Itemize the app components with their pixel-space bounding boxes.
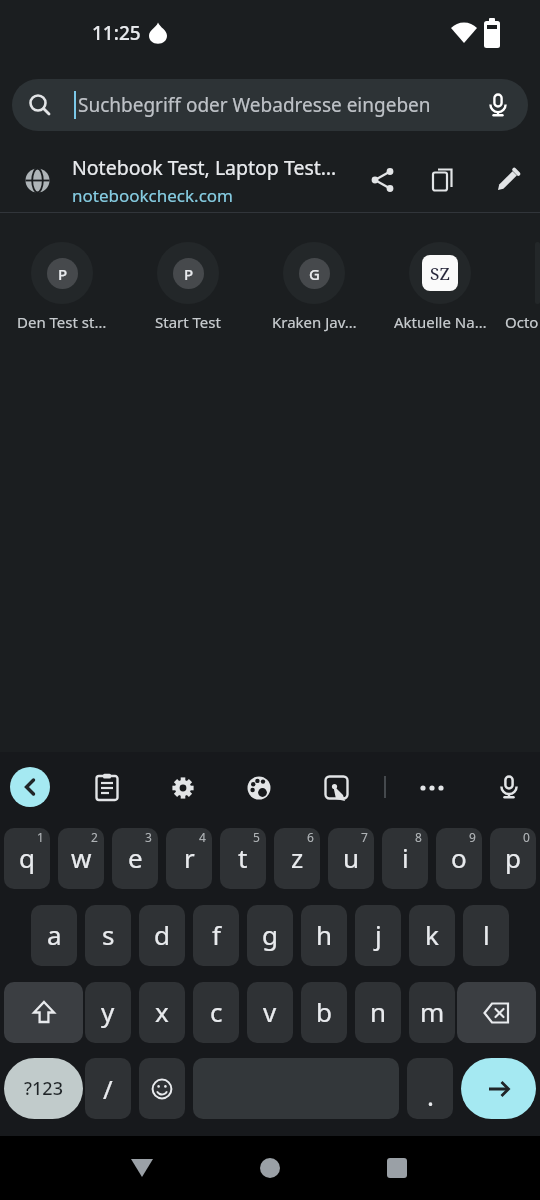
button[interactable]: k <box>409 905 455 966</box>
button[interactable] <box>457 982 536 1043</box>
button[interactable] <box>416 771 448 803</box>
button[interactable]: / <box>85 1058 131 1119</box>
staticText: c <box>210 994 223 1029</box>
staticText: i <box>402 840 409 875</box>
staticText: o <box>451 840 467 875</box>
staticText: Start Test <box>155 312 221 332</box>
staticText: 9 <box>469 829 476 845</box>
button[interactable] <box>493 772 525 804</box>
staticText: u <box>343 840 360 875</box>
staticText: d <box>154 917 170 952</box>
button[interactable]: j <box>355 905 401 966</box>
button[interactable] <box>461 1058 536 1119</box>
button[interactable]: y <box>85 982 131 1043</box>
button[interactable]: m <box>409 982 455 1043</box>
staticText: Octob <box>505 312 540 332</box>
staticText: 11:25 <box>92 20 141 46</box>
button[interactable]: P <box>126 238 250 342</box>
staticText: x <box>155 994 169 1029</box>
button[interactable]: Suchbegriff oder Webadresse eingeben <box>12 79 528 131</box>
button[interactable] <box>426 162 462 198</box>
staticText: f <box>212 917 221 952</box>
button[interactable] <box>91 771 123 803</box>
button[interactable]: u <box>328 828 374 889</box>
button[interactable]: v <box>247 982 293 1043</box>
staticText: e <box>128 840 143 875</box>
staticText: s <box>102 917 115 952</box>
button[interactable] <box>120 1146 164 1190</box>
button[interactable] <box>365 162 401 198</box>
staticText: . <box>427 1078 434 1113</box>
button[interactable]: P <box>0 238 124 342</box>
staticText: Notebook Test, Laptop Test… <box>72 154 337 181</box>
staticText: SZ <box>430 262 450 285</box>
staticText: Den Test st… <box>17 312 107 332</box>
button[interactable]: s <box>85 905 131 966</box>
button[interactable]: p <box>490 828 536 889</box>
button[interactable]: G <box>252 238 376 342</box>
button[interactable] <box>321 771 353 803</box>
button[interactable] <box>4 982 83 1043</box>
button[interactable] <box>243 771 275 803</box>
staticText: 4 <box>199 829 206 845</box>
staticText: r <box>184 840 195 875</box>
button[interactable]: q <box>4 828 50 889</box>
button[interactable]: SZ <box>378 238 502 342</box>
staticText: v <box>263 994 277 1029</box>
staticText: P <box>184 264 194 284</box>
button[interactable]: x <box>139 982 185 1043</box>
staticText: Aktuelle Na… <box>394 312 487 332</box>
button[interactable]: t <box>220 828 266 889</box>
button[interactable]: d <box>139 905 185 966</box>
staticText: / <box>103 1071 113 1106</box>
button[interactable]: n <box>355 982 401 1043</box>
button[interactable] <box>10 767 50 807</box>
button[interactable]: l <box>463 905 509 966</box>
button[interactable]: z <box>274 828 320 889</box>
staticText: w <box>71 840 92 875</box>
staticText: 2 <box>91 829 98 845</box>
staticText: k <box>425 917 439 952</box>
staticText: P <box>58 264 68 284</box>
button[interactable] <box>375 1146 419 1190</box>
staticText: b <box>316 994 332 1029</box>
staticText: 0 <box>523 829 530 845</box>
button[interactable]: r <box>166 828 212 889</box>
staticText: notebookcheck.com <box>72 184 234 207</box>
staticText: ?123 <box>24 1076 63 1101</box>
staticText: 8 <box>415 829 422 845</box>
staticText: a <box>47 917 62 952</box>
button[interactable]: f <box>193 905 239 966</box>
button[interactable] <box>490 162 526 198</box>
button[interactable]: Notebook Test, Laptop Test… <box>0 148 540 212</box>
staticText: 6 <box>307 829 314 845</box>
staticText: j <box>375 917 382 952</box>
button[interactable]: a <box>31 905 77 966</box>
button[interactable] <box>139 1058 185 1119</box>
button[interactable]: i <box>382 828 428 889</box>
staticText: l <box>483 917 490 952</box>
staticText: q <box>19 840 35 875</box>
button[interactable]: ?123 <box>4 1058 83 1119</box>
button[interactable] <box>167 771 199 803</box>
staticText: 3 <box>145 829 152 845</box>
button[interactable]: . <box>407 1058 453 1119</box>
button[interactable]: h <box>301 905 347 966</box>
button[interactable]: c <box>193 982 239 1043</box>
staticText: G <box>309 264 320 284</box>
staticText: 5 <box>253 829 260 845</box>
staticText: 1 <box>37 829 44 845</box>
staticText: p <box>505 840 521 875</box>
button[interactable]: b <box>301 982 347 1043</box>
staticText: g <box>262 917 278 952</box>
button[interactable]: w <box>58 828 104 889</box>
button[interactable] <box>248 1146 292 1190</box>
staticText: Suchbegriff oder Webadresse eingeben <box>78 92 431 118</box>
staticText: Kraken Jav… <box>272 312 357 332</box>
button[interactable]: g <box>247 905 293 966</box>
staticText: y <box>101 994 115 1029</box>
button[interactable]: o <box>436 828 482 889</box>
staticText: m <box>420 994 445 1029</box>
button[interactable]: e <box>112 828 158 889</box>
